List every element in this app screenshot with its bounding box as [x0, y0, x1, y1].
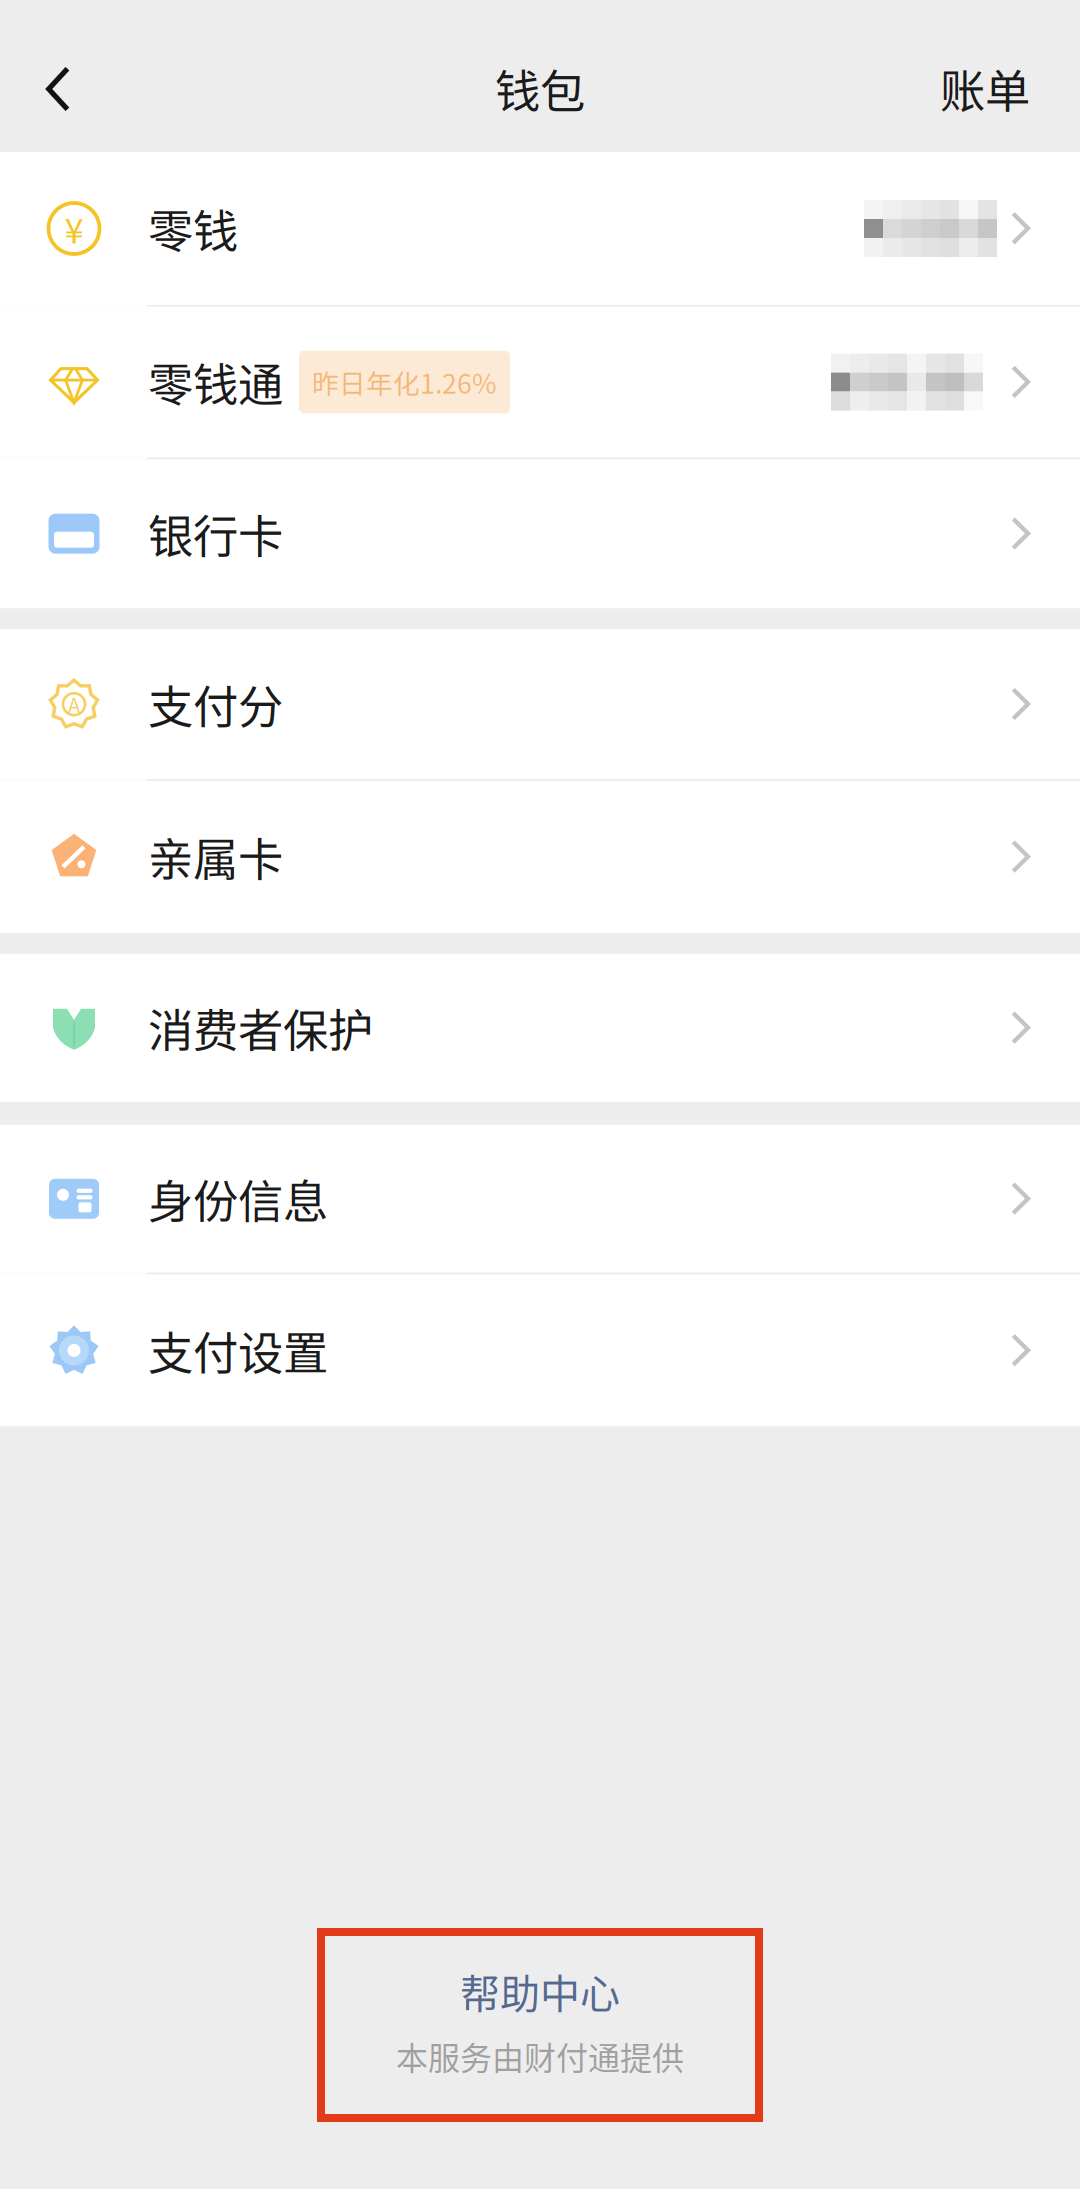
button[interactable]: 亲属卡	[0, 781, 1080, 933]
staticText: 身份信息	[148, 1166, 328, 1232]
button[interactable]: Back	[0, 20, 103, 132]
button[interactable]: 帮助中心	[317, 1928, 763, 2122]
staticText: 支付分	[148, 671, 283, 737]
button[interactable]: 账单	[908, 8, 1080, 144]
button[interactable]: 零钱通	[0, 307, 1080, 458]
button[interactable]: 消费者保护	[0, 954, 1080, 1102]
button[interactable]: A	[0, 629, 1080, 779]
staticText: 账单	[940, 56, 1030, 121]
staticText: 昨日年化1.26%	[312, 363, 497, 401]
button[interactable]: ¥	[0, 152, 1080, 305]
button[interactable]: 身份信息	[0, 1125, 1080, 1273]
staticText: 零钱	[148, 196, 238, 261]
staticText: 本服务由财付通提供	[396, 2033, 684, 2079]
staticText: A	[68, 690, 80, 719]
staticText: ¥	[64, 203, 83, 254]
staticText: 钱包	[495, 56, 585, 121]
staticText: 消费者保护	[148, 995, 373, 1061]
staticText: 亲属卡	[148, 824, 283, 890]
staticText: 银行卡	[148, 501, 283, 566]
button[interactable]: 银行卡	[0, 459, 1080, 608]
staticText: 帮助中心	[460, 1962, 620, 2020]
button[interactable]: 支付设置	[0, 1274, 1080, 1426]
staticText: 支付设置	[148, 1318, 328, 1383]
staticText: 零钱通	[148, 349, 283, 415]
